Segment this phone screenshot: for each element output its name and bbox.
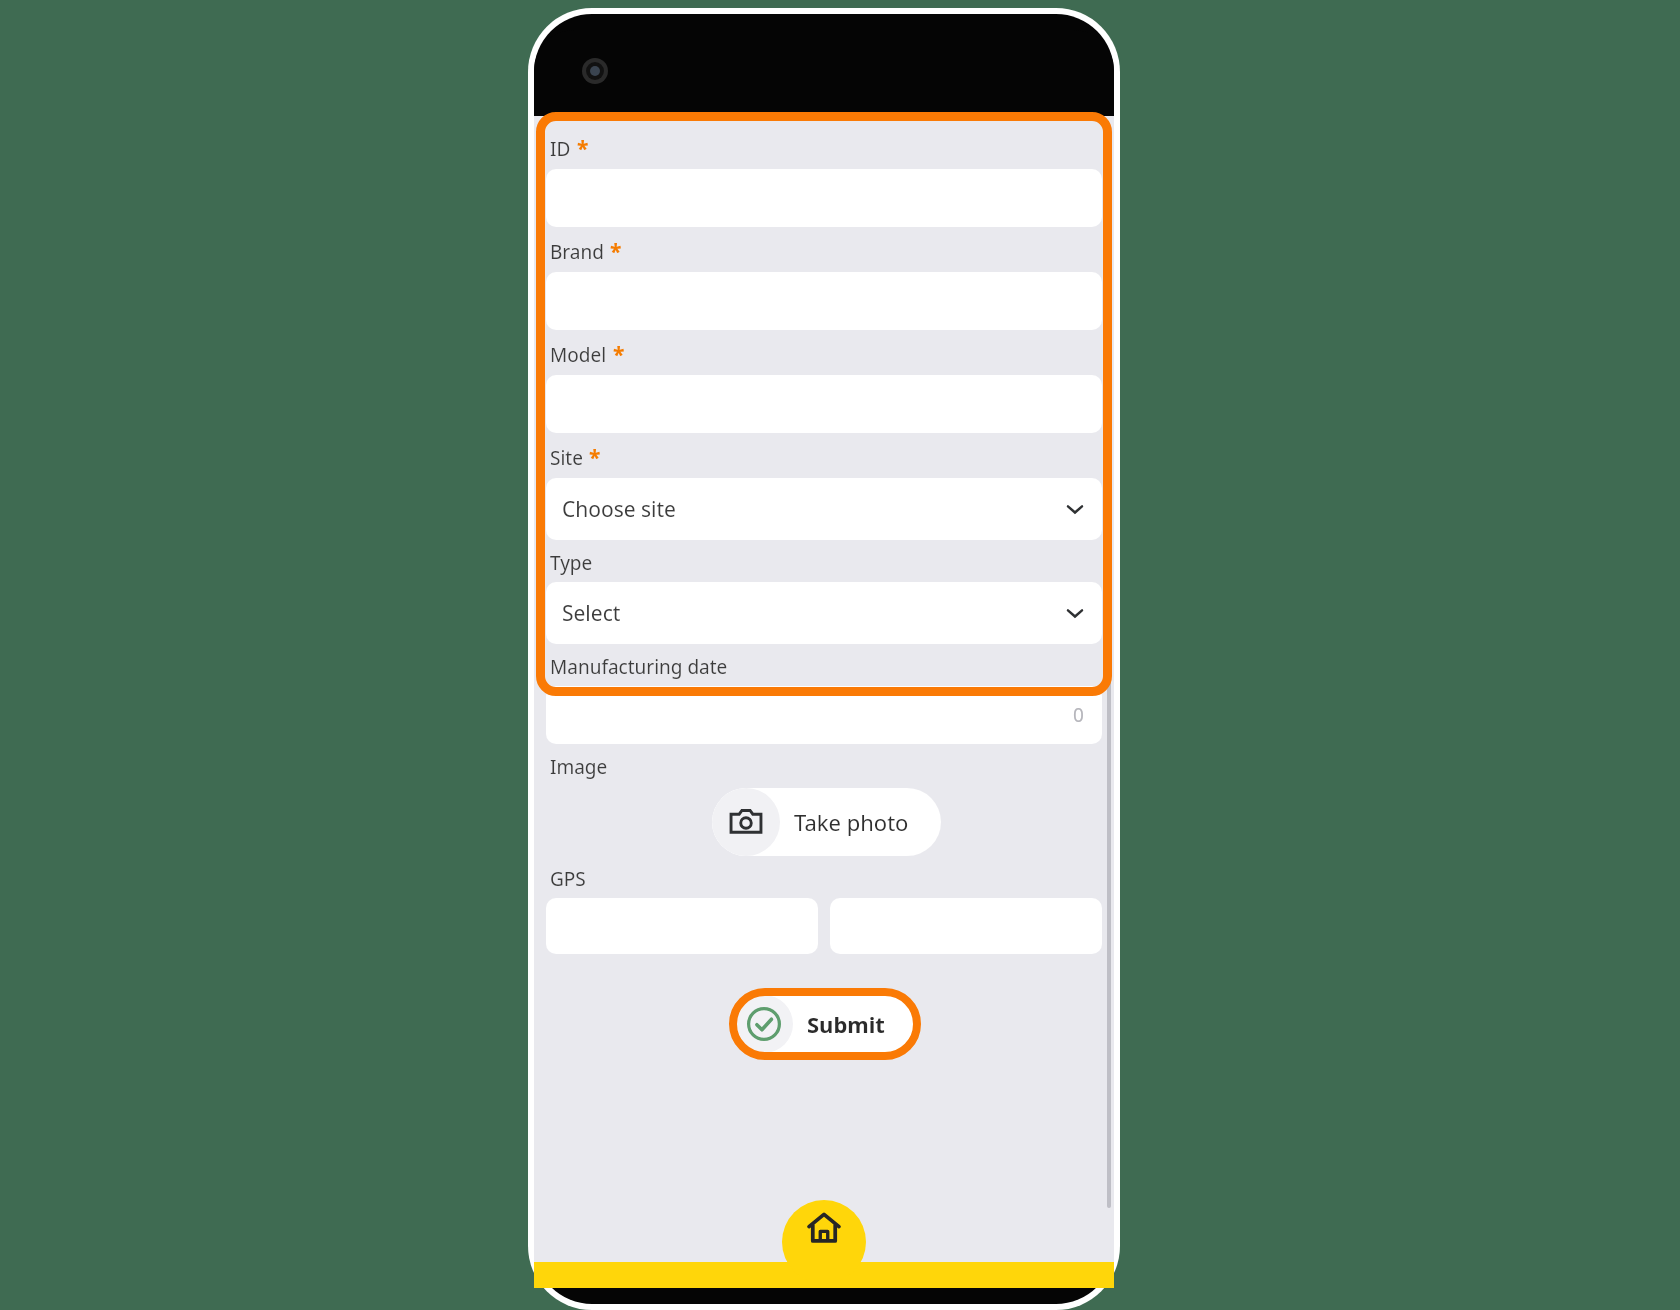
staticText: Type [550,550,593,576]
staticText: * [613,340,625,369]
staticText: 0 [1073,702,1084,728]
staticText: Submit [807,1009,885,1039]
staticText: Model [550,342,607,368]
staticText: ID [550,136,571,162]
staticText: Choose site [562,495,1064,524]
staticText: Brand [550,239,604,265]
staticText: * [577,134,589,163]
staticText: GPS [550,866,586,892]
button[interactable]: Home [782,1200,866,1284]
button[interactable]: Take photo [712,788,941,856]
staticText: Select [562,599,1064,628]
button[interactable]: 0 [546,686,1102,744]
staticText: Take photo [794,807,909,837]
button[interactable]: Choose site [546,478,1102,540]
staticText: Site [550,445,583,471]
staticText: Manufacturing date [550,654,728,680]
staticText: * [589,443,601,472]
button[interactable]: Submit [735,995,915,1053]
staticText: * [610,237,622,266]
staticText: Image [550,754,608,780]
button[interactable]: Select [546,582,1102,644]
